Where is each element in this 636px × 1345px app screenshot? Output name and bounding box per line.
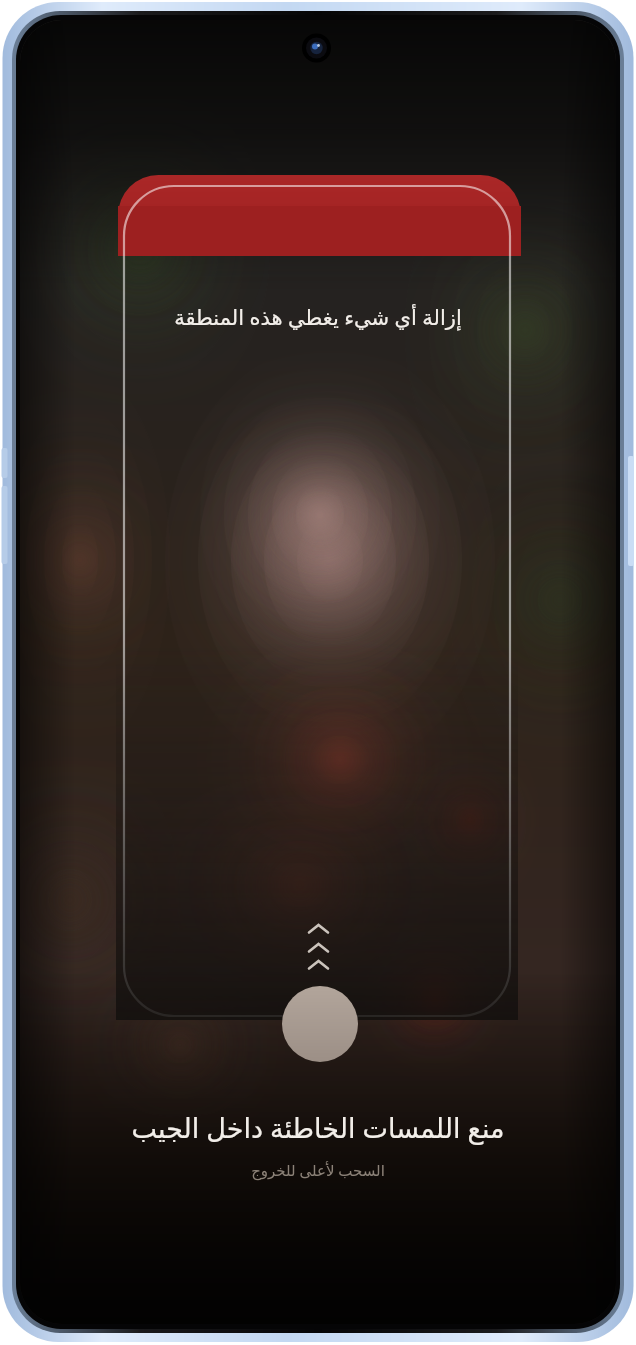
button[interactable]: Swipe up to exit: [243, 1160, 393, 1180]
staticText: السحب لأعلى للخروج: [251, 1160, 385, 1180]
staticText: إزالة أي شيء يغطي هذه المنطقة: [168, 303, 468, 332]
button[interactable]: إزالة أي شيء يغطي هذه المنطقة: [168, 303, 468, 332]
button[interactable]: منع اللمسات الخاطئة داخل الجيب: [123, 1109, 513, 1146]
staticText: منع اللمسات الخاطئة داخل الجيب: [131, 1109, 505, 1146]
